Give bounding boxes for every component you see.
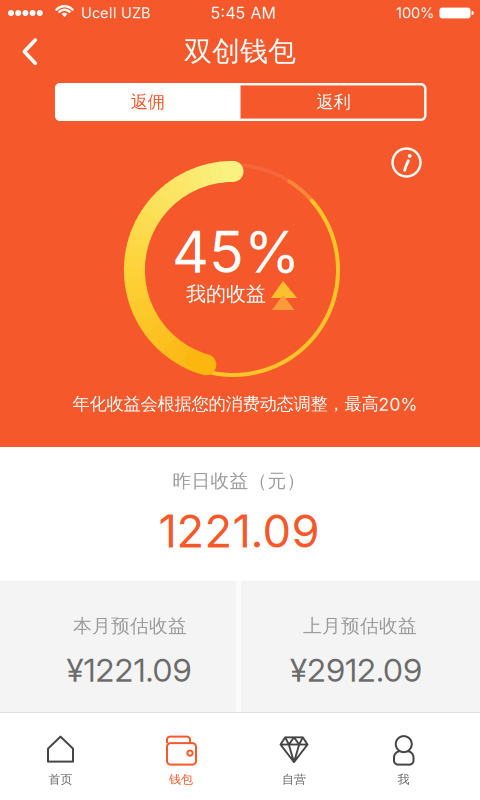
staticText: 返利: [316, 91, 350, 113]
staticText: 首页: [48, 772, 72, 787]
staticText: 我: [397, 772, 409, 787]
button[interactable]: 收益说明: [388, 144, 424, 180]
staticText: 本月预估收益: [73, 614, 187, 637]
staticText: 1221.09: [158, 504, 319, 558]
staticText: 自营: [282, 772, 306, 787]
staticText: 昨日收益（元）: [172, 469, 305, 492]
staticText: ¥1221.09: [66, 651, 191, 689]
button[interactable]: 自营: [239, 725, 349, 797]
staticText: 年化收益会根据您的消费动态调整，最高20%: [72, 393, 417, 415]
button[interactable]: 我: [348, 725, 458, 797]
staticText: ¥2912.09: [290, 651, 422, 689]
staticText: 上月预估收益: [303, 614, 417, 637]
button[interactable]: 返佣: [55, 83, 240, 121]
staticText: 45%: [172, 218, 300, 286]
button[interactable]: 返回: [7, 29, 51, 73]
button[interactable]: 首页: [5, 725, 115, 797]
staticText: Ucell UZB: [81, 4, 151, 22]
staticText: 钱包: [169, 772, 193, 787]
staticText: 100%: [396, 4, 434, 22]
button[interactable]: 返利: [240, 83, 426, 121]
staticText: 双创钱包: [184, 34, 296, 69]
staticText: 我的收益: [186, 282, 266, 306]
staticText: 5:45 AM: [210, 4, 275, 22]
button[interactable]: 钱包: [126, 725, 236, 797]
staticText: 返佣: [131, 91, 165, 113]
